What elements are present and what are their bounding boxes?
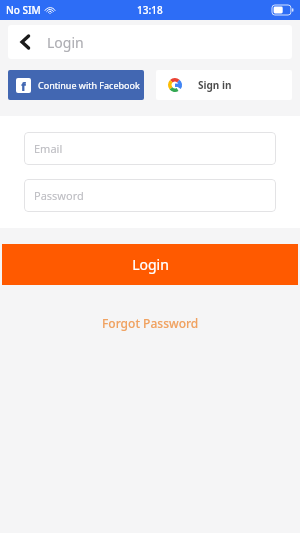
button[interactable]: Back <box>8 25 292 59</box>
other: Back <box>20 34 31 50</box>
staticText: 13:18 <box>137 3 163 17</box>
button[interactable]: Email <box>24 132 276 165</box>
button[interactable]: Password <box>24 179 276 212</box>
button[interactable]: Google <box>156 70 292 100</box>
staticText: f <box>21 78 26 93</box>
staticText: Email <box>34 141 63 156</box>
staticText: No SIM <box>6 3 41 17</box>
staticText: Forgot Password <box>102 315 199 331</box>
button[interactable]: Forgot Password <box>0 311 300 335</box>
staticText: Sign in <box>198 78 232 92</box>
button[interactable]: f <box>8 70 144 100</box>
staticText: Continue with Facebook <box>38 79 140 91</box>
staticText: Login <box>47 33 84 52</box>
other: Google <box>168 78 182 92</box>
staticText: Login <box>132 255 169 274</box>
staticText: Password <box>34 188 84 203</box>
button[interactable]: Login <box>2 244 298 285</box>
